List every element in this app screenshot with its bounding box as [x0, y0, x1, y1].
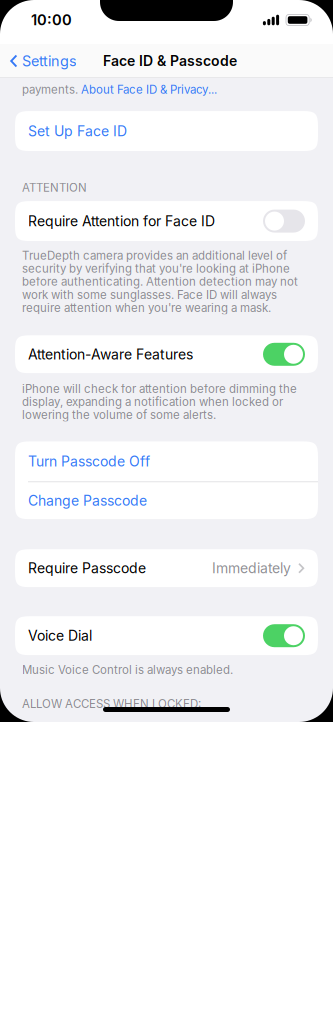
- staticText: Immediately: [212, 560, 291, 577]
- staticText: Change Passcode: [28, 492, 147, 509]
- staticText: TrueDepth camera provides an additional …: [22, 249, 298, 314]
- staticText: Attention-Aware Features: [28, 346, 193, 363]
- button[interactable]: Voice Dial: [15, 616, 318, 655]
- staticText: ALLOW ACCESS WHEN LOCKED:: [22, 697, 201, 710]
- staticText: payments.: [22, 83, 81, 96]
- button[interactable]: Attention-Aware Features: [15, 335, 318, 373]
- button[interactable]: Change Passcode: [15, 482, 318, 519]
- staticText: 10:00: [31, 11, 72, 29]
- button[interactable]: About Face ID & Privacy...: [81, 83, 217, 96]
- staticText: Voice Dial: [28, 627, 92, 644]
- button[interactable]: Turn Passcode Off: [15, 441, 318, 481]
- button[interactable]: Require Attention for Face ID: [15, 201, 318, 241]
- staticText: Require Passcode: [28, 560, 146, 577]
- staticText: ATTENTION: [22, 181, 87, 194]
- staticText: Music Voice Control is always enabled.: [22, 663, 233, 676]
- button[interactable]: Require Passcode: [15, 549, 318, 587]
- staticText: Set Up Face ID: [28, 123, 127, 139]
- button[interactable]: Set Up Face ID: [15, 111, 318, 151]
- staticText: iPhone will check for attention before d…: [22, 382, 297, 421]
- staticText: Settings: [22, 52, 77, 70]
- staticText: Require Attention for Face ID: [28, 213, 215, 229]
- staticText: About Face ID & Privacy...: [81, 83, 217, 96]
- button[interactable]: Settings: [0, 44, 83, 78]
- staticText: Turn Passcode Off: [28, 453, 150, 470]
- staticText: Face ID & Passcode: [103, 52, 237, 69]
